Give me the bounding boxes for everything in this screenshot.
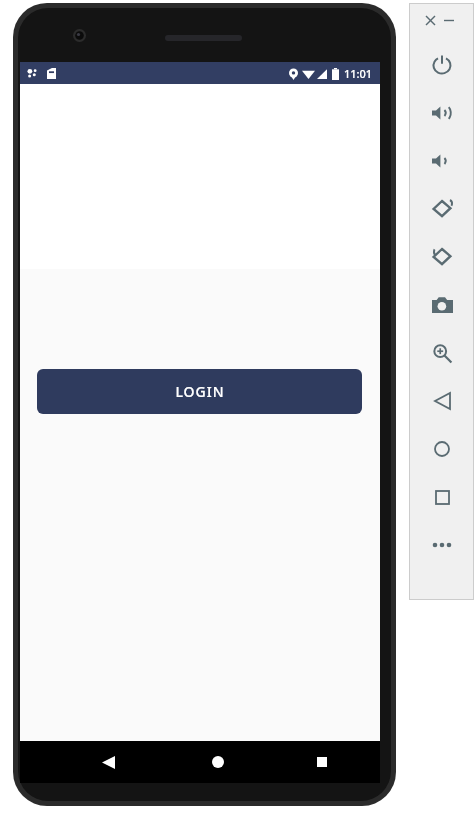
button[interactable]: Volume down xyxy=(416,137,468,185)
button[interactable]: LOGIN xyxy=(37,369,362,414)
button[interactable]: Back xyxy=(82,741,134,783)
button[interactable]: Home xyxy=(416,425,468,473)
button[interactable]: Recent apps xyxy=(296,741,348,783)
button[interactable]: Overview xyxy=(416,473,468,521)
button[interactable]: Volume up xyxy=(416,89,468,137)
button[interactable]: Zoom xyxy=(416,329,468,377)
button[interactable]: Home xyxy=(192,741,244,783)
button[interactable]: Power xyxy=(416,41,468,89)
staticText: LOGIN xyxy=(175,382,225,401)
button[interactable]: Take screenshot xyxy=(416,281,468,329)
button[interactable]: Rotate left xyxy=(416,185,468,233)
staticText: 11:01 xyxy=(344,66,373,81)
button[interactable]: Back xyxy=(416,377,468,425)
button[interactable]: Close xyxy=(421,11,439,29)
button[interactable]: More xyxy=(416,521,468,569)
button[interactable]: Rotate right xyxy=(416,233,468,281)
button[interactable]: Minimize xyxy=(440,11,458,29)
